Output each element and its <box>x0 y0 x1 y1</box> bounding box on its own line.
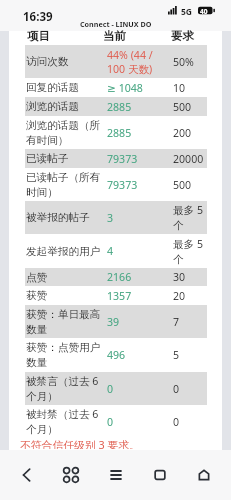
staticText: 79373 <box>107 152 138 166</box>
button[interactable]: 回复的话题 <box>25 78 207 97</box>
staticText: 4 <box>107 244 114 258</box>
button[interactable]: Back <box>10 458 44 492</box>
staticText: 16:39 <box>23 9 53 25</box>
staticText: 0 <box>107 415 114 429</box>
staticText: 30 <box>173 270 186 284</box>
button[interactable]: Recents <box>143 458 177 492</box>
staticText: 0 <box>173 415 180 429</box>
staticText: 500 <box>173 178 192 192</box>
button[interactable]: Home <box>187 458 221 492</box>
staticText: 2885 <box>107 126 132 140</box>
staticText: 不符合信任级别 3 要求。 <box>20 437 140 449</box>
staticText: 3 <box>107 211 114 225</box>
staticText: 0 <box>107 382 114 396</box>
staticText: 要求 <box>171 29 194 43</box>
staticText: 50% <box>173 55 194 69</box>
staticText: 浏览的话题（所 有时间） <box>26 119 101 147</box>
staticText: 被举报的帖子 <box>26 211 90 224</box>
staticText: 被封禁（过去 6 个月） <box>26 407 99 436</box>
staticText: 访问次数 <box>26 55 69 68</box>
button[interactable]: 点赞 <box>25 268 207 286</box>
staticText: 44% (44 / 100 天数) <box>107 48 153 76</box>
staticText: 回复的话题 <box>26 81 79 94</box>
staticText: 79373 <box>107 178 138 192</box>
staticText: 发起举报的用户 <box>26 245 101 258</box>
staticText: 当前 <box>103 29 126 43</box>
staticText: 0 <box>173 382 180 396</box>
button[interactable]: 被禁言（过去 6 个月） <box>25 372 207 405</box>
button[interactable]: 访问次数 <box>25 45 207 78</box>
staticText: 1357 <box>107 289 132 303</box>
button[interactable]: 浏览的话题（所 有时间） <box>25 116 207 149</box>
staticText: 496 <box>107 348 126 362</box>
staticText: 5G <box>181 6 193 18</box>
button[interactable]: 发起举报的用户 <box>25 234 207 268</box>
staticText: 已读帖子（所有 时间） <box>26 171 101 199</box>
staticText: 20 <box>173 289 186 303</box>
button[interactable]: Apps <box>54 458 88 492</box>
button[interactable]: 获赞 <box>25 286 207 305</box>
button[interactable]: 获赞：单日最高 数量 <box>25 305 207 338</box>
staticText: 39 <box>107 315 120 329</box>
staticText: 获赞：点赞用户 数量 <box>26 341 101 369</box>
button[interactable]: 已读帖子（所有 时间） <box>25 168 207 201</box>
staticText: 2885 <box>107 100 132 114</box>
staticText: 5 <box>173 348 180 362</box>
staticText: 项目 <box>27 29 50 43</box>
staticText: 获赞 <box>26 289 48 302</box>
staticText: 7 <box>173 315 180 329</box>
button[interactable]: 获赞：点赞用户 数量 <box>25 338 207 372</box>
staticText: 最多 5 个 <box>173 237 204 266</box>
staticText: 已读帖子 <box>26 152 69 165</box>
button[interactable]: 被封禁（过去 6 个月） <box>25 405 207 438</box>
staticText: 最多 5 个 <box>173 203 204 232</box>
staticText: 500 <box>173 100 192 114</box>
staticText: 获赞：单日最高 数量 <box>26 308 101 336</box>
staticText: ≥ 1048 <box>107 81 143 95</box>
staticText: 浏览的话题 <box>26 100 79 113</box>
staticText: Connect - LINUX DO <box>80 19 152 29</box>
button[interactable]: 浏览的话题 <box>25 97 207 116</box>
staticText: 2166 <box>107 270 132 284</box>
staticText: 200 <box>173 126 192 140</box>
button[interactable]: Menu <box>99 458 133 492</box>
button[interactable]: 已读帖子 <box>25 149 207 168</box>
staticText: 被禁言（过去 6 个月） <box>26 374 99 403</box>
staticText: 20000 <box>173 152 204 166</box>
staticText: 40 <box>200 7 208 16</box>
staticText: 10 <box>173 81 186 95</box>
button[interactable]: 被举报的帖子 <box>25 201 207 234</box>
staticText: 点赞 <box>26 271 48 284</box>
